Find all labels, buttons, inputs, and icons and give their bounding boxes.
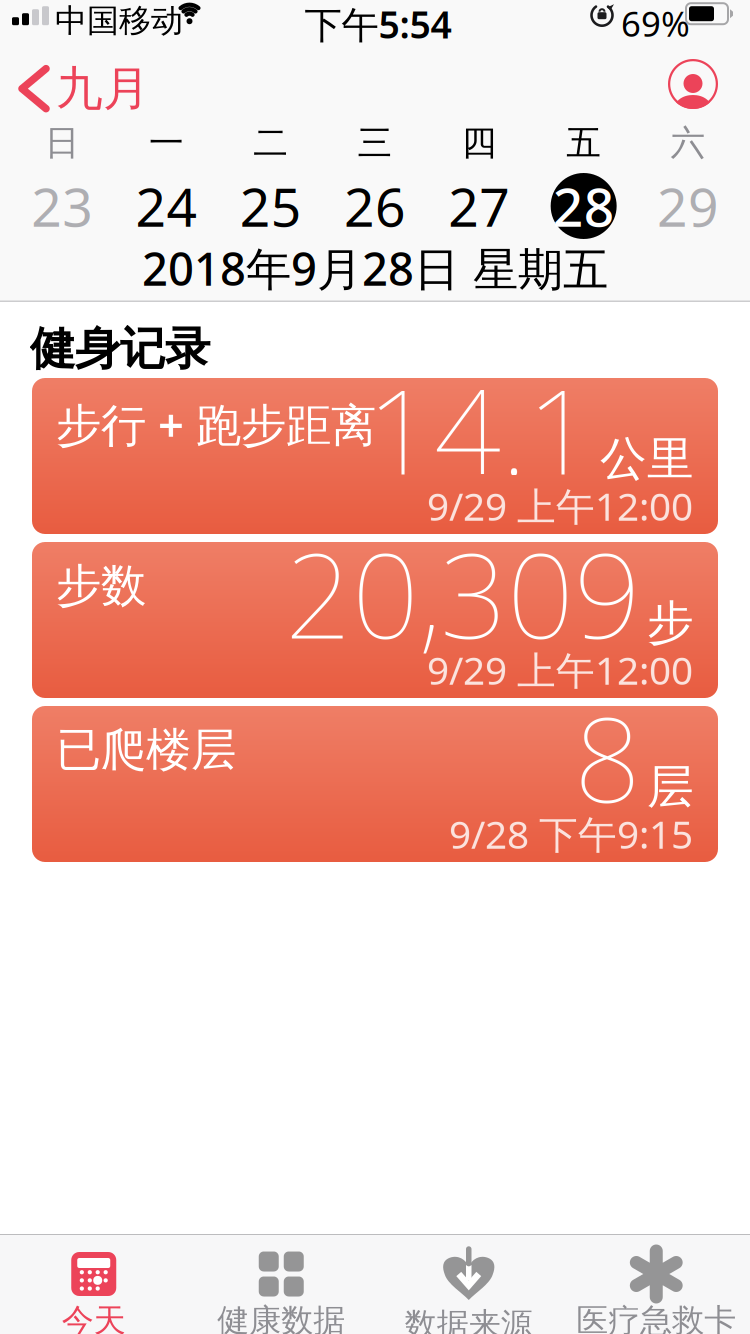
button[interactable]: 已爬楼层 xyxy=(32,706,718,862)
button[interactable]: 25 xyxy=(219,173,323,239)
staticText: 24 xyxy=(135,171,197,241)
staticText: 14.1 xyxy=(367,351,594,507)
button[interactable]: 24 xyxy=(114,173,219,239)
button[interactable]: 今天 xyxy=(0,1252,187,1334)
staticText: 日 xyxy=(45,122,80,164)
staticText: 9/28 下午9:15 xyxy=(449,808,693,859)
button[interactable]: 步数 xyxy=(32,542,718,698)
staticText: 层 xyxy=(647,758,694,815)
staticText: 步 xyxy=(647,594,694,651)
staticText: 六 xyxy=(670,122,705,164)
staticText: 26 xyxy=(344,171,406,241)
button[interactable]: 步行 + 跑步距离 xyxy=(32,378,718,534)
button[interactable]: 医疗急救卡 xyxy=(562,1252,750,1334)
staticText: 一 xyxy=(149,122,184,164)
staticText: 23 xyxy=(31,171,93,241)
staticText: 9/29 上午12:00 xyxy=(427,480,693,531)
staticText: 25 xyxy=(240,171,302,241)
button[interactable]: 23 xyxy=(10,173,114,239)
staticText: 2018年9月28日 星期五 xyxy=(142,238,608,298)
staticText: 今天 xyxy=(62,1301,126,1334)
button[interactable]: 26 xyxy=(323,173,427,239)
staticText: 已爬楼层 xyxy=(56,722,236,778)
staticText: 三 xyxy=(357,122,392,164)
staticText: 五 xyxy=(566,122,601,164)
staticText: 69% xyxy=(621,0,690,46)
staticText: 健身记录 xyxy=(30,321,210,377)
staticText: 9/29 上午12:00 xyxy=(427,644,693,695)
staticText: 九月 xyxy=(56,60,150,117)
button[interactable]: 29 xyxy=(636,173,740,239)
staticText: 健康数据 xyxy=(217,1301,345,1334)
button[interactable]: 27 xyxy=(427,173,531,239)
staticText: 27 xyxy=(448,171,510,241)
staticText: 下午5:54 xyxy=(304,0,451,49)
staticText: 数据来源 xyxy=(405,1305,533,1334)
button[interactable]: 九月 xyxy=(22,60,150,117)
button[interactable]: 28 xyxy=(531,173,636,239)
staticText: 20,309 xyxy=(285,515,641,671)
staticText: 步数 xyxy=(56,558,146,614)
staticText: 中国移动 xyxy=(55,1,183,40)
staticText: 二 xyxy=(253,122,288,164)
button[interactable]: 健康数据 xyxy=(187,1252,375,1334)
staticText: 29 xyxy=(657,171,719,241)
staticText: 四 xyxy=(462,122,497,164)
button[interactable]: 数据来源 xyxy=(375,1248,562,1334)
staticText: 8 xyxy=(574,679,641,835)
staticText: 公里 xyxy=(600,430,694,487)
staticText: 步行 + 跑步距离 xyxy=(56,394,376,454)
button[interactable]: 个人资料 xyxy=(668,59,718,109)
staticText: 医疗急救卡 xyxy=(576,1301,736,1334)
staticText: 28 xyxy=(553,171,615,241)
